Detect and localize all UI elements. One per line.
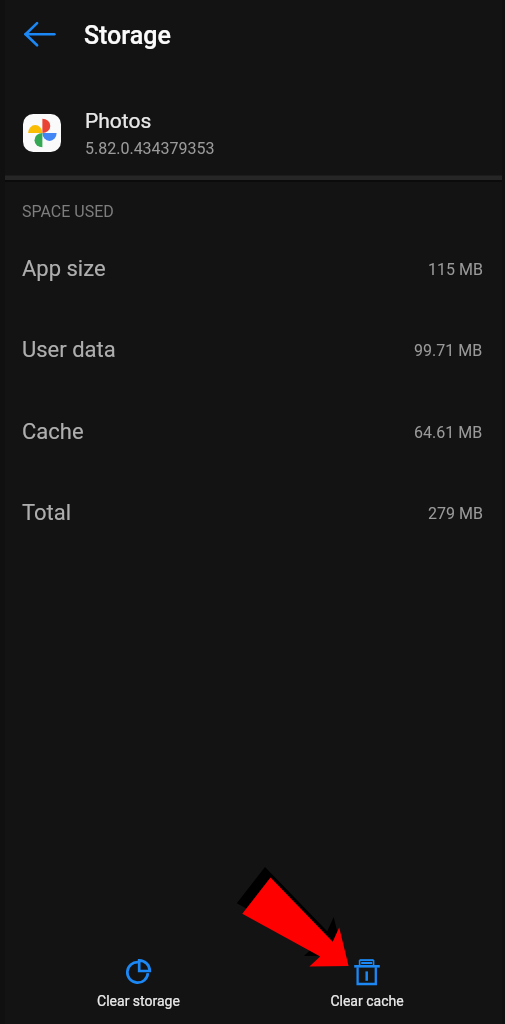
- staticText: 115 MB: [428, 260, 483, 279]
- button[interactable]: Clear storage: [28, 935, 248, 1023]
- button[interactable]: Photos: [0, 101, 505, 165]
- staticText: Cache: [22, 419, 84, 445]
- staticText: User data: [22, 337, 116, 363]
- button[interactable]: Total: [0, 485, 505, 541]
- staticText: App size: [22, 256, 106, 282]
- button[interactable]: Clear cache: [257, 935, 477, 1023]
- button[interactable]: User data: [0, 322, 505, 378]
- staticText: Total: [22, 500, 72, 526]
- staticText: Clear cache: [330, 993, 404, 1009]
- staticText: Photos: [85, 109, 152, 134]
- staticText: Storage: [84, 21, 171, 50]
- staticText: 279 MB: [428, 504, 483, 523]
- button[interactable]: Cache: [0, 404, 505, 460]
- staticText: 99.71 MB: [414, 341, 483, 360]
- button[interactable]: Back: [8, 3, 72, 67]
- button[interactable]: App size: [0, 241, 505, 297]
- staticText: Clear storage: [97, 993, 180, 1009]
- staticText: 5.82.0.434379353: [85, 139, 215, 158]
- staticText: 64.61 MB: [414, 423, 483, 442]
- staticText: SPACE USED: [22, 202, 114, 221]
